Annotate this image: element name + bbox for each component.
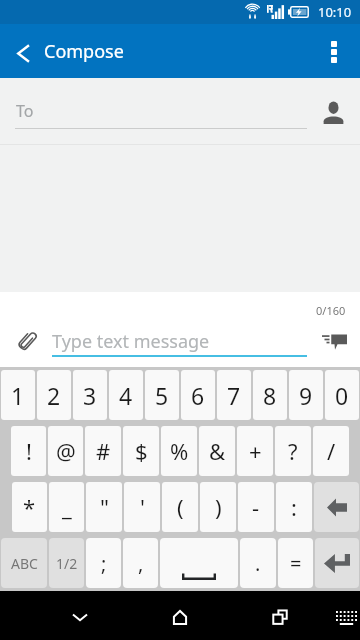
- staticText: ': [140, 492, 145, 522]
- button[interactable]: *: [12, 482, 47, 532]
- button[interactable]: 0: [325, 370, 359, 420]
- button[interactable]: .: [240, 538, 276, 588]
- button[interactable]: !: [11, 426, 46, 476]
- staticText: %: [170, 436, 189, 466]
- staticText: 10:10: [318, 3, 352, 21]
- button[interactable]: 4: [109, 370, 143, 420]
- button[interactable]: 1: [1, 370, 35, 420]
- button[interactable]: Home: [128, 591, 232, 640]
- staticText: @: [56, 436, 76, 466]
- staticText: 4: [119, 380, 133, 411]
- staticText: ?: [288, 436, 298, 466]
- button[interactable]: Switch keyboard: [333, 591, 360, 640]
- staticText: ": [100, 492, 109, 522]
- button[interactable]: $: [123, 426, 159, 476]
- staticText: ): [215, 492, 222, 522]
- button[interactable]: =: [278, 538, 313, 588]
- button[interactable]: Backspace: [314, 482, 359, 532]
- button[interactable]: 8: [253, 370, 287, 420]
- staticText: (: [177, 492, 184, 522]
- button[interactable]: ?: [275, 426, 311, 476]
- staticText: Compose: [44, 39, 124, 64]
- staticText: To: [16, 100, 34, 122]
- button[interactable]: ;: [86, 538, 121, 588]
- staticText: 0/160: [316, 303, 346, 318]
- button[interactable]: ": [86, 482, 122, 532]
- staticText: ,: [138, 550, 144, 577]
- button[interactable]: ': [124, 482, 160, 532]
- staticText: 1/2: [56, 554, 78, 573]
- staticText: :: [291, 492, 297, 522]
- button[interactable]: (: [162, 482, 198, 532]
- button[interactable]: 2: [37, 370, 71, 420]
- staticText: #: [96, 436, 111, 466]
- button[interactable]: ): [200, 482, 236, 532]
- staticText: -: [252, 492, 260, 522]
- button[interactable]: 3: [73, 370, 107, 420]
- staticText: 5: [155, 380, 169, 411]
- button[interactable]: ABC: [1, 538, 47, 588]
- button[interactable]: -: [238, 482, 274, 532]
- button[interactable]: &: [199, 426, 235, 476]
- staticText: $: [135, 436, 148, 466]
- staticText: 6: [191, 380, 205, 411]
- staticText: ;: [101, 550, 107, 577]
- button[interactable]: Space: [160, 538, 238, 588]
- staticText: &: [209, 436, 226, 466]
- button[interactable]: ,: [123, 538, 158, 588]
- button[interactable]: :: [276, 482, 312, 532]
- staticText: 0: [335, 380, 349, 411]
- button[interactable]: Attach: [5, 318, 49, 362]
- button[interactable]: 9: [289, 370, 323, 420]
- staticText: /: [327, 436, 336, 466]
- staticText: =: [290, 550, 302, 577]
- button[interactable]: 5: [145, 370, 179, 420]
- button[interactable]: %: [161, 426, 197, 476]
- button[interactable]: #: [85, 426, 121, 476]
- button[interactable]: Send message: [312, 318, 356, 362]
- staticText: .: [255, 550, 261, 577]
- staticText: +: [249, 436, 262, 466]
- button[interactable]: _: [49, 482, 84, 532]
- button[interactable]: Choose contact: [311, 90, 355, 134]
- staticText: 1: [11, 380, 25, 411]
- button[interactable]: 6: [181, 370, 215, 420]
- button[interactable]: 7: [217, 370, 251, 420]
- button[interactable]: Recents: [228, 591, 332, 640]
- button[interactable]: Back: [0, 24, 45, 78]
- staticText: Type text message: [52, 329, 210, 354]
- staticText: 3: [83, 380, 97, 411]
- button[interactable]: /: [313, 426, 349, 476]
- staticText: ABC: [11, 554, 38, 573]
- staticText: _: [62, 492, 72, 522]
- button[interactable]: Hide keyboard: [28, 591, 132, 640]
- staticText: 2: [47, 380, 61, 411]
- button[interactable]: Enter: [315, 538, 359, 588]
- button[interactable]: More options: [312, 24, 360, 78]
- staticText: !: [26, 436, 32, 466]
- staticText: 9: [299, 380, 313, 411]
- button[interactable]: +: [237, 426, 273, 476]
- staticText: 7: [227, 380, 241, 411]
- staticText: 8: [263, 380, 277, 411]
- button[interactable]: 1/2: [49, 538, 84, 588]
- staticText: *: [23, 492, 36, 522]
- button[interactable]: @: [48, 426, 83, 476]
